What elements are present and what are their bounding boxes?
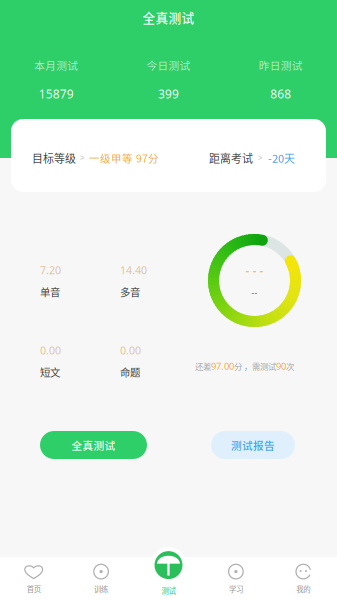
staticText: 全真测试 [142, 8, 194, 26]
staticText: 0.00 [120, 343, 141, 357]
staticText: 90 [276, 360, 286, 372]
button[interactable]: 全真测试 [40, 431, 147, 459]
staticText: 测试报告 [231, 437, 275, 453]
staticText: 15879 [39, 86, 74, 102]
staticText: 14.40 [120, 263, 147, 277]
staticText: 399 [158, 86, 179, 102]
staticText: 训练 [94, 584, 108, 594]
staticText: 本月测试 [34, 57, 78, 73]
button[interactable]: 测试 [150, 554, 186, 600]
staticText: 多音 [120, 284, 140, 299]
staticText: > [258, 153, 263, 163]
button[interactable]: 目标等级 [32, 150, 159, 166]
staticText: > [80, 153, 85, 163]
staticText: 97.00 [211, 360, 234, 372]
staticText: 一级甲等 [89, 150, 133, 166]
staticText: 次 [286, 360, 294, 372]
staticText: 全真测试 [71, 437, 115, 453]
staticText: 7.20 [40, 263, 61, 277]
staticText: 0.00 [40, 343, 61, 357]
staticText: 命题 [120, 364, 140, 379]
staticText: 单音 [40, 284, 60, 299]
staticText: 昨日测试 [259, 57, 303, 73]
staticText: 学习 [229, 584, 243, 594]
staticText: 我的 [296, 584, 310, 594]
button[interactable]: 训练 [67, 558, 135, 599]
button[interactable]: 距离考试 [209, 150, 295, 166]
staticText: 目标等级 [32, 150, 76, 166]
button[interactable]: 我的 [270, 558, 337, 599]
staticText: 97分 [136, 150, 159, 166]
staticText: 分 ，需测试 [234, 360, 276, 372]
staticText: -20天 [268, 150, 295, 166]
button[interactable]: 学习 [202, 558, 270, 599]
button[interactable]: 首页 [0, 558, 67, 599]
staticText: 测试 [161, 585, 175, 596]
staticText: 868 [270, 86, 291, 102]
button[interactable]: 测试报告 [211, 431, 295, 459]
staticText: 距离考试 [209, 150, 253, 166]
staticText: 还差 [195, 360, 211, 372]
staticText: - - - [245, 263, 263, 279]
staticText: 短文 [40, 364, 60, 379]
staticText: 今日测试 [146, 57, 190, 73]
staticText: 首页 [27, 583, 41, 594]
staticText: -- [251, 288, 257, 298]
